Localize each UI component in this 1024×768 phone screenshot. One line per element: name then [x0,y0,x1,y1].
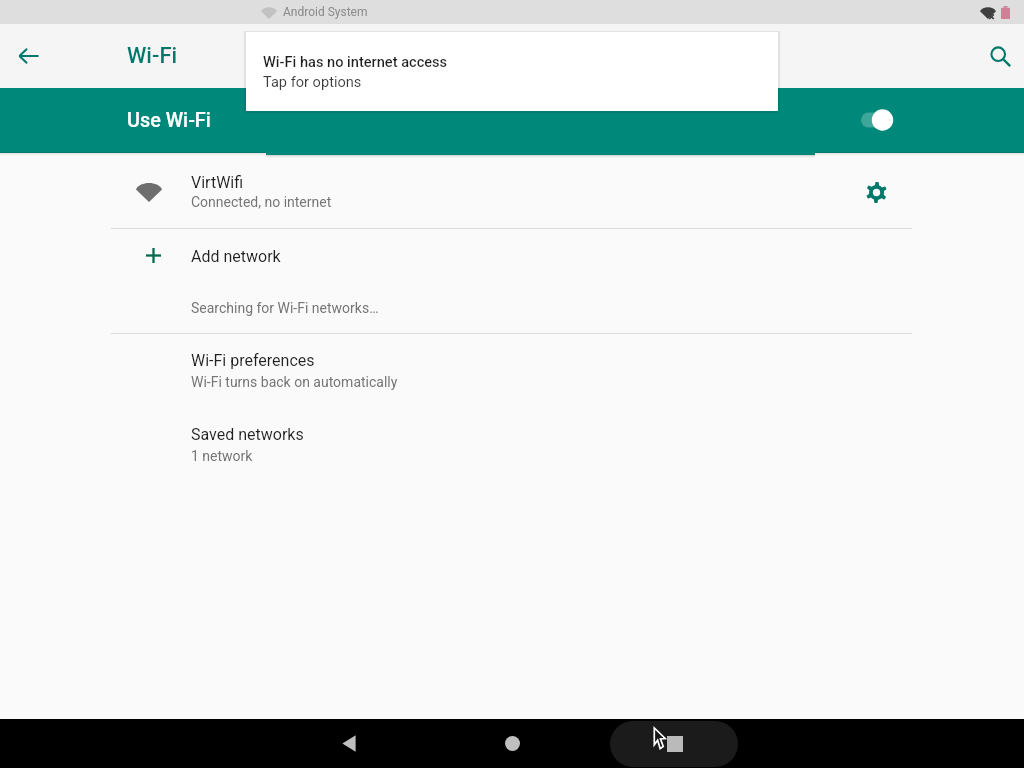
staticText: Wi-Fi [127,43,178,69]
button[interactable]: Wi-Fi preferences [0,334,1024,406]
staticText: Wi-Fi turns back on automatically [191,374,398,390]
button[interactable]: Network settings [856,172,896,212]
button[interactable]: Recent apps [610,721,738,767]
button[interactable]: VirtWifi [0,155,1024,228]
button[interactable]: Back [310,719,388,768]
staticText: Searching for Wi-Fi networks… [191,300,379,316]
staticText: Saved networks [191,425,304,444]
staticText: Tap for options [263,73,362,90]
staticText: Android System [283,5,368,19]
staticText: Add network [191,247,281,266]
button[interactable]: Saved networks [0,408,1024,480]
button[interactable]: Wi-Fi has no internet access [246,32,778,111]
staticText: 1 network [191,448,253,464]
staticText: Use Wi-Fi [127,109,211,132]
staticText: VirtWifi [191,173,244,192]
button[interactable]: Use Wi-Fi [0,88,1024,153]
button[interactable]: Home [473,719,551,768]
staticText: Wi-Fi has no internet access [263,53,448,70]
staticText: Wi-Fi preferences [191,351,315,370]
button[interactable]: Search [980,36,1020,76]
button[interactable]: Use Wi-Fi, on [850,98,906,142]
button[interactable]: Add network [0,229,1024,283]
staticText: Connected, no internet [191,194,332,210]
button[interactable]: Navigate up [9,36,49,76]
